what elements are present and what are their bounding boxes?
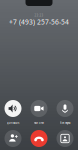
staticText: +7 (493) 257-56-54 <box>9 18 69 26</box>
button[interactable]: Завершить <box>30 130 47 147</box>
button[interactable]: динамик <box>4 100 21 117</box>
staticText: без звука <box>60 121 70 125</box>
staticText: динамик <box>7 121 19 125</box>
button[interactable]: добавить <box>4 130 21 147</box>
staticText: 23:23 <box>34 14 43 17</box>
button[interactable]: без звука <box>56 100 73 117</box>
button[interactable]: FaceTime <box>30 100 47 117</box>
button[interactable]: контакты <box>56 130 73 147</box>
staticText: FaceTime <box>33 121 44 125</box>
